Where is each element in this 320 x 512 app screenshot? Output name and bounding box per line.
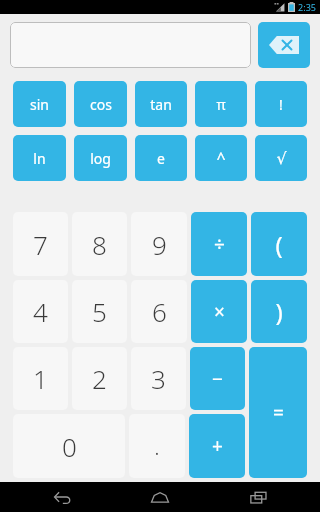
- staticText: ln: [33, 149, 46, 168]
- button[interactable]: ^: [195, 135, 247, 181]
- button[interactable]: 6: [131, 280, 187, 343]
- button[interactable]: 8: [72, 212, 127, 276]
- button[interactable]: ÷: [191, 212, 247, 276]
- button[interactable]: !: [255, 81, 307, 127]
- button[interactable]: cos: [74, 81, 127, 127]
- button[interactable]: Backspace: [258, 22, 310, 68]
- staticText: 2: [92, 361, 107, 396]
- button[interactable]: 1: [13, 347, 68, 410]
- staticText: 8: [92, 227, 107, 262]
- button[interactable]: [10, 22, 251, 68]
- button[interactable]: =: [249, 347, 307, 478]
- staticText: ×: [214, 299, 225, 325]
- staticText: (: [275, 228, 283, 261]
- staticText: 9: [152, 227, 167, 262]
- button[interactable]: ln: [13, 135, 66, 181]
- button[interactable]: 5: [72, 280, 127, 343]
- button[interactable]: e: [135, 135, 187, 181]
- button[interactable]: −: [190, 347, 245, 410]
- staticText: =: [273, 400, 284, 426]
- staticText: 6: [152, 294, 167, 329]
- button[interactable]: ): [251, 280, 307, 343]
- button[interactable]: +: [189, 414, 245, 478]
- staticText: 3: [151, 361, 166, 396]
- staticText: 2:35: [298, 1, 316, 13]
- button[interactable]: 2: [72, 347, 127, 410]
- button[interactable]: 7: [13, 212, 68, 276]
- button[interactable]: Recent apps: [227, 482, 289, 512]
- button[interactable]: tan: [135, 81, 187, 127]
- button[interactable]: ×: [191, 280, 247, 343]
- staticText: ^: [216, 147, 226, 169]
- staticText: +: [212, 433, 223, 459]
- staticText: ): [275, 295, 283, 328]
- button[interactable]: 9: [131, 212, 187, 276]
- staticText: 1: [33, 361, 48, 396]
- button[interactable]: 4: [13, 280, 68, 343]
- staticText: 5: [92, 294, 107, 329]
- staticText: e: [157, 149, 165, 168]
- button[interactable]: sin: [13, 81, 66, 127]
- button[interactable]: Home: [129, 482, 191, 512]
- staticText: log: [90, 149, 111, 168]
- staticText: π: [216, 95, 226, 114]
- staticText: .: [154, 431, 160, 461]
- staticText: tan: [150, 95, 172, 114]
- button[interactable]: π: [195, 81, 247, 127]
- button[interactable]: 0: [13, 414, 125, 478]
- staticText: sin: [30, 95, 49, 114]
- staticText: cos: [90, 95, 112, 114]
- button[interactable]: .: [129, 414, 185, 478]
- button[interactable]: √: [255, 135, 307, 181]
- staticText: 4: [33, 294, 48, 329]
- staticText: 7: [33, 227, 48, 262]
- staticText: !: [279, 95, 283, 114]
- staticText: −: [212, 366, 223, 392]
- button[interactable]: Back: [31, 482, 93, 512]
- button[interactable]: 3: [131, 347, 186, 410]
- button[interactable]: (: [251, 212, 307, 276]
- button[interactable]: log: [74, 135, 127, 181]
- staticText: 0: [62, 429, 77, 464]
- staticText: √: [276, 149, 287, 168]
- staticText: ÷: [214, 231, 225, 257]
